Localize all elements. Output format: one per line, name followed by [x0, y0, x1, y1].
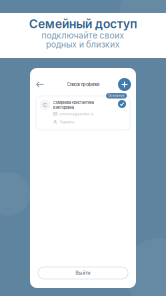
button[interactable]: С [36, 96, 130, 130]
staticText: родных и близких [46, 39, 120, 50]
staticText: Родитель [59, 120, 74, 124]
button[interactable]: Назад [35, 79, 45, 89]
staticText: подключайте своих [41, 30, 124, 41]
staticText: Список профилей [67, 82, 99, 87]
staticText: Викторовна [53, 105, 74, 110]
staticText: Смирнова Константина [53, 100, 94, 105]
staticText: Основной [108, 94, 124, 97]
staticText: Семейный доступ [29, 17, 137, 31]
button[interactable]: Выйти [38, 267, 128, 279]
staticText: smirnova@yandex.ru [59, 112, 93, 116]
button[interactable]: Добавить профиль [118, 78, 131, 91]
staticText: Выйти [75, 270, 90, 276]
staticText: С [43, 102, 47, 108]
